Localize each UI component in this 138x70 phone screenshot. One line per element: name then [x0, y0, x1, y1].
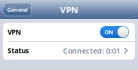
- staticText: Connected: 0:01: [63, 46, 120, 56]
- button[interactable]: Status: [3, 42, 135, 60]
- staticText: Status: [7, 46, 28, 55]
- staticText: ON: [104, 28, 113, 36]
- staticText: VPN: [7, 27, 21, 37]
- staticText: VPN: [60, 3, 78, 15]
- staticText: General: [7, 6, 28, 13]
- button[interactable]: General: [2, 3, 31, 16]
